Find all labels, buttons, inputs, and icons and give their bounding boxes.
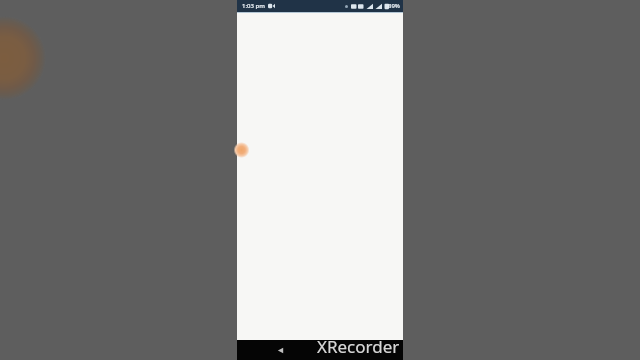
button[interactable]: Back: [271, 341, 289, 359]
staticText: XRecorder: [317, 335, 400, 358]
staticText: 1:03 pm: [242, 2, 265, 10]
staticText: 89%: [388, 2, 400, 10]
